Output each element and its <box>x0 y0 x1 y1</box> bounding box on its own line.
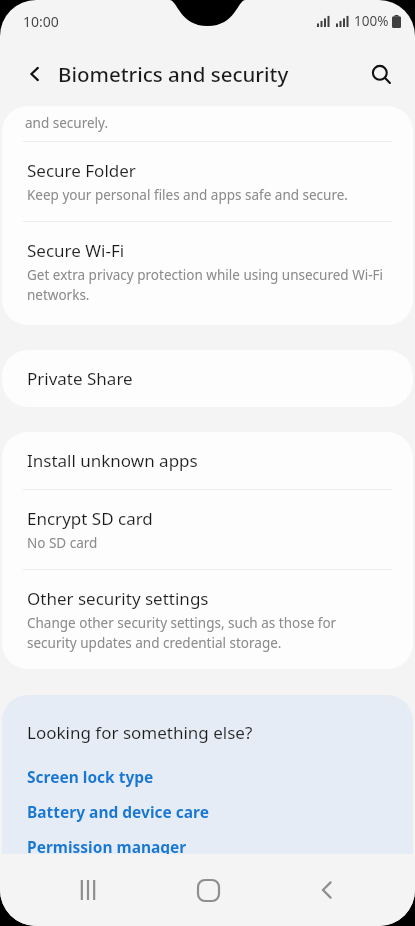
button[interactable]: Search <box>360 53 402 95</box>
button[interactable]: Secure Folder <box>2 142 413 221</box>
button[interactable]: Private Share <box>2 350 413 407</box>
staticText: Biometrics and security <box>58 60 289 88</box>
button[interactable]: Other security settings <box>2 570 413 669</box>
staticText: Secure Wi-Fi <box>27 239 125 262</box>
button[interactable]: Screen lock type <box>27 759 388 794</box>
staticText: 100% <box>354 12 389 30</box>
button[interactable]: Install unknown apps <box>2 432 413 489</box>
button[interactable]: Back <box>295 858 359 922</box>
staticText: and securely. <box>25 114 108 132</box>
staticText: Other security settings <box>27 587 209 610</box>
staticText: Battery and device care <box>27 801 209 822</box>
button[interactable]: Home <box>176 858 240 922</box>
staticText: Secure Folder <box>27 159 136 182</box>
staticText: No SD card <box>27 534 98 552</box>
staticText: Encrypt SD card <box>27 507 153 530</box>
staticText: Change other security settings, such as … <box>27 614 388 652</box>
button[interactable]: Encrypt SD card <box>2 490 413 569</box>
button[interactable]: Secure Wi-Fi <box>2 222 413 321</box>
staticText: Looking for something else? <box>27 721 253 744</box>
button[interactable]: Recents <box>56 858 120 922</box>
staticText: Private Share <box>27 367 133 390</box>
staticText: Permission manager <box>27 836 187 857</box>
button[interactable]: Battery and device care <box>27 794 388 829</box>
staticText: Screen lock type <box>27 766 154 787</box>
staticText: Install unknown apps <box>27 449 198 472</box>
staticText: 10:00 <box>23 12 59 31</box>
button[interactable]: Back <box>14 53 56 95</box>
staticText: Get extra privacy protection while using… <box>27 266 388 304</box>
button[interactable]: Permission manager <box>27 829 388 864</box>
staticText: Keep your personal files and apps safe a… <box>27 186 348 204</box>
